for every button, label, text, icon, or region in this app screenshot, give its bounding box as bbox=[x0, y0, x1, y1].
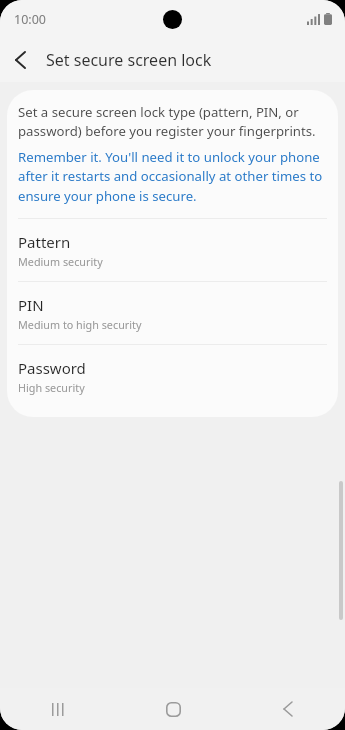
button[interactable]: Password bbox=[7, 345, 338, 407]
staticText: Medium security bbox=[18, 254, 103, 269]
staticText: Remember it. You'll need it to unlock yo… bbox=[18, 148, 327, 205]
staticText: PIN bbox=[18, 295, 44, 315]
button[interactable]: PIN bbox=[7, 282, 338, 344]
staticText: Medium to high security bbox=[18, 317, 142, 332]
staticText: Set secure screen lock bbox=[46, 49, 212, 71]
staticText: Set a secure screen lock type (pattern, … bbox=[18, 103, 327, 140]
button[interactable]: Pattern bbox=[7, 219, 338, 281]
staticText: High security bbox=[18, 380, 85, 395]
staticText: 10:00 bbox=[14, 11, 46, 28]
button[interactable]: Navigate up bbox=[0, 40, 40, 80]
button[interactable]: Home bbox=[137, 688, 209, 730]
staticText: Password bbox=[18, 358, 86, 378]
staticText: Pattern bbox=[18, 232, 71, 252]
button[interactable]: Recent apps bbox=[22, 688, 94, 730]
button[interactable]: Back bbox=[252, 688, 324, 730]
